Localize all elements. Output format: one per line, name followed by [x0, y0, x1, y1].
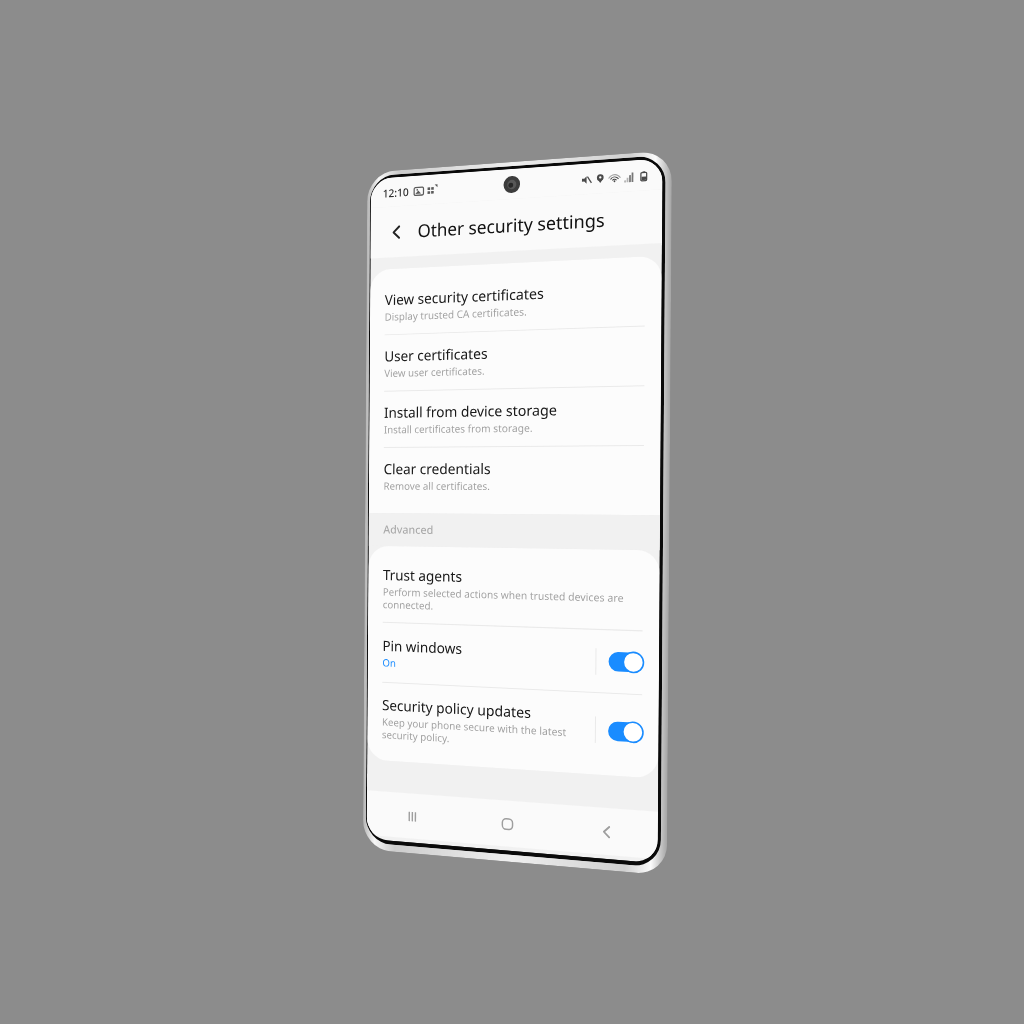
staticText: View user certificates.: [384, 364, 485, 380]
staticText: Security policy updates: [382, 694, 531, 722]
button[interactable]: User certificates: [369, 326, 661, 391]
staticText: Other security settings: [417, 207, 606, 243]
button[interactable]: Install from device storage: [369, 386, 661, 447]
staticText: Remove all certificates.: [383, 479, 491, 493]
staticText: Pin windows: [382, 635, 463, 658]
staticText: Install certificates from storage.: [384, 421, 533, 436]
staticText: View security certificates: [385, 283, 544, 309]
button[interactable]: Home: [459, 797, 556, 851]
staticText: Advanced: [383, 522, 433, 538]
staticText: 12:10: [383, 184, 410, 200]
button[interactable]: Security policy updates: [367, 682, 659, 770]
staticText: Trust agents: [383, 564, 462, 586]
button[interactable]: Back: [556, 804, 658, 859]
staticText: Install from device storage: [384, 399, 557, 422]
staticText: Display trusted CA certificates.: [385, 304, 527, 324]
staticText: Keep your phone secure with the latest s…: [382, 715, 567, 752]
button[interactable]: On: [608, 652, 643, 673]
staticText: Perform selected actions when trusted de…: [383, 585, 624, 618]
button[interactable]: Navigate up: [382, 216, 410, 247]
button[interactable]: Trust agents: [368, 553, 660, 631]
button[interactable]: Pin windows: [368, 622, 659, 695]
button[interactable]: Clear credentials: [369, 446, 661, 505]
button[interactable]: On: [608, 721, 643, 743]
staticText: User certificates: [384, 343, 488, 365]
button[interactable]: View security certificates: [370, 266, 662, 335]
staticText: Clear credentials: [384, 458, 491, 478]
staticText: On: [382, 656, 396, 670]
button[interactable]: Recents: [367, 790, 459, 843]
